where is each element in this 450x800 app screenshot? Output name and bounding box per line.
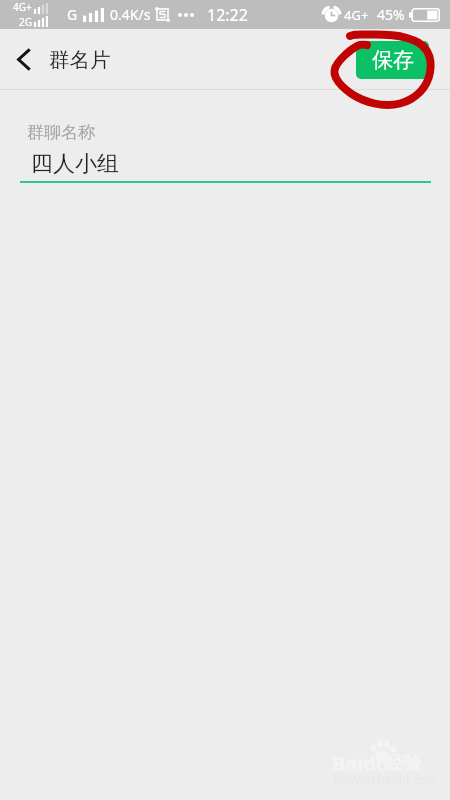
button[interactable]: Back <box>0 36 46 82</box>
staticText: 12:22 <box>207 4 248 26</box>
staticText: 保存 <box>372 47 414 73</box>
staticText: 群名片 <box>49 47 111 73</box>
staticText: 2G <box>19 15 32 29</box>
button[interactable]: 四人小组 <box>20 150 431 178</box>
staticText: 群聊名称 <box>27 122 95 143</box>
staticText: 0.4K/s <box>110 5 151 24</box>
staticText: G <box>67 5 78 24</box>
button[interactable]: 保存 <box>356 41 429 79</box>
staticText: 四人小组 <box>31 150 119 178</box>
staticText: 45% <box>377 5 405 24</box>
staticText: 4G+ <box>344 6 369 24</box>
staticText: 4G+ <box>13 0 32 14</box>
